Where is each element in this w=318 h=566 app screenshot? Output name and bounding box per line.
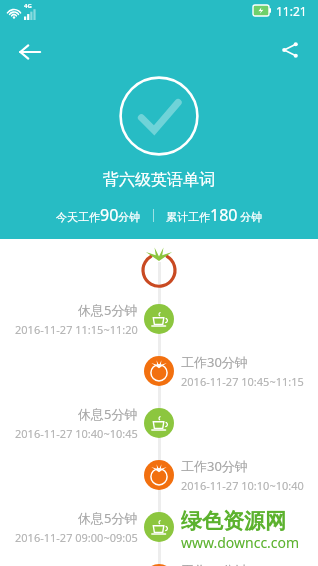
button[interactable]: 工作30分钟: [0, 348, 318, 394]
staticText: 绿色资源网: [181, 508, 286, 534]
staticText: 4G: [24, 2, 32, 10]
staticText: 2016-11-27 10:40~10:45: [15, 426, 138, 441]
staticText: 2016-11-27 10:10~10:40: [181, 478, 304, 493]
staticText: 今天工作90分钟: [56, 204, 141, 226]
button[interactable]: 工作30分钟: [0, 556, 318, 566]
staticText: 11:21: [276, 3, 307, 19]
staticText: 2016-11-27 10:45~11:15: [181, 374, 304, 389]
staticText: 工作30分钟: [181, 457, 248, 475]
staticText: 休息5分钟: [78, 509, 138, 527]
staticText: 2016-11-27 11:15~11:20: [15, 322, 138, 337]
staticText: 工作30分钟: [181, 353, 248, 371]
staticText: 休息5分钟: [78, 301, 138, 319]
staticText: 累计工作180 分钟: [166, 204, 263, 226]
staticText: 休息5分钟: [78, 405, 138, 423]
staticText: 2016-11-27 09:00~09:05: [15, 530, 138, 545]
button[interactable]: 休息5分钟: [0, 400, 318, 446]
button[interactable]: Share: [270, 30, 310, 70]
button[interactable]: 休息5分钟: [0, 504, 318, 550]
button[interactable]: Back: [8, 30, 52, 74]
staticText: www.downcc.com: [181, 533, 300, 552]
staticText: 背六级英语单词: [0, 170, 318, 190]
staticText: 工作30分钟: [181, 561, 248, 566]
button[interactable]: 工作30分钟: [0, 452, 318, 498]
button[interactable]: 休息5分钟: [0, 296, 318, 342]
